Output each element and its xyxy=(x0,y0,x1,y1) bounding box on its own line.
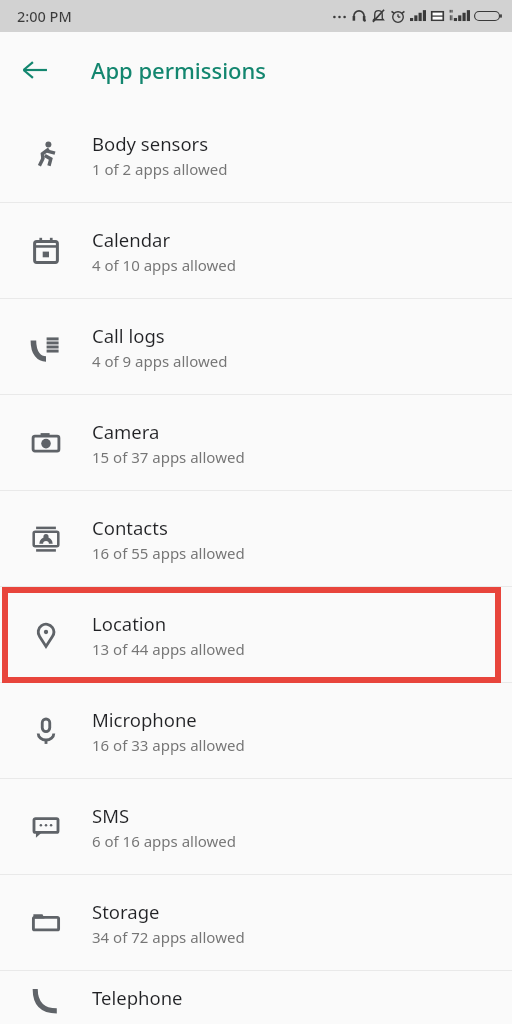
staticText: Storage xyxy=(92,899,160,924)
button[interactable]: Back xyxy=(13,48,57,92)
staticText: Microphone xyxy=(92,707,197,732)
button[interactable]: Calendar xyxy=(0,203,512,298)
staticText: 2:00 PM xyxy=(17,6,72,26)
button[interactable]: SMS xyxy=(0,779,512,874)
staticText: Contacts xyxy=(92,515,168,540)
staticText: 34 of 72 apps allowed xyxy=(92,927,245,947)
staticText: Telephone xyxy=(92,985,183,1010)
button[interactable]: Call logs xyxy=(0,299,512,394)
staticText: 4 of 9 apps allowed xyxy=(92,351,228,371)
staticText: Call logs xyxy=(92,323,165,348)
staticText: 1 of 2 apps allowed xyxy=(92,159,228,179)
staticText: Camera xyxy=(92,419,160,444)
button[interactable]: Camera xyxy=(0,395,512,490)
staticText: 4 of 10 apps allowed xyxy=(92,255,237,275)
button[interactable]: Storage xyxy=(0,875,512,970)
staticText: Body sensors xyxy=(92,131,209,156)
staticText: 16 of 55 apps allowed xyxy=(92,543,245,563)
staticText: App permissions xyxy=(91,55,267,85)
button[interactable]: Microphone xyxy=(0,683,512,778)
staticText: Location xyxy=(92,611,167,636)
button[interactable]: Contacts xyxy=(0,491,512,586)
button[interactable]: Location xyxy=(0,587,512,682)
staticText: 15 of 37 apps allowed xyxy=(92,447,245,467)
button[interactable]: Telephone xyxy=(0,971,512,1024)
staticText: SMS xyxy=(92,803,130,828)
staticText: 6 of 16 apps allowed xyxy=(92,831,237,851)
button[interactable]: Body sensors xyxy=(0,107,512,202)
staticText: Calendar xyxy=(92,227,171,252)
staticText: 16 of 33 apps allowed xyxy=(92,735,245,755)
staticText: 13 of 44 apps allowed xyxy=(92,639,245,659)
